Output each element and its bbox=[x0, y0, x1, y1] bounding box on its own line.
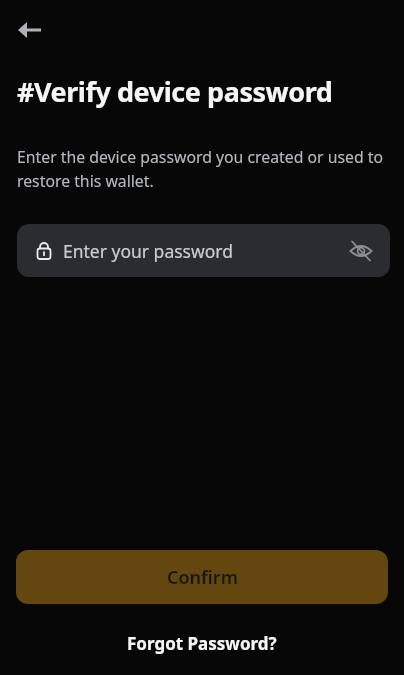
button[interactable]: Forgot Password? bbox=[117, 626, 287, 661]
staticText: #Verify device password bbox=[17, 73, 333, 110]
staticText: Forgot Password? bbox=[127, 632, 277, 655]
button[interactable]: Confirm bbox=[16, 550, 388, 604]
staticText: Confirm bbox=[167, 565, 238, 590]
staticText: Enter the device password you created or… bbox=[17, 146, 383, 191]
staticText: Enter your password bbox=[63, 239, 233, 263]
button[interactable] bbox=[348, 238, 374, 264]
button[interactable] bbox=[8, 12, 52, 48]
button[interactable]: Enter your password bbox=[17, 224, 390, 277]
